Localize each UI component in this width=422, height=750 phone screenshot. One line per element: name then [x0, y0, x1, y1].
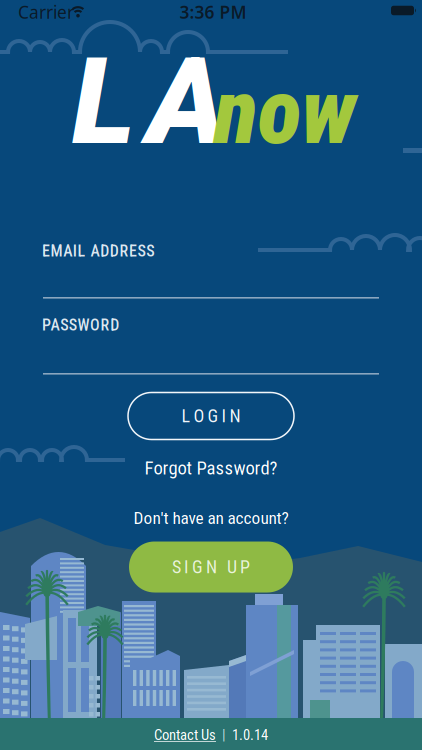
- staticText: L A: [72, 32, 226, 172]
- button[interactable]: Contact Us: [154, 726, 216, 744]
- staticText: L O G I N: [181, 405, 240, 427]
- staticText: PASSWORD: [42, 316, 119, 334]
- button[interactable]: S I G N U P: [129, 541, 293, 592]
- button[interactable]: L O G I N: [128, 392, 294, 439]
- staticText: Forgot Password?: [144, 457, 277, 479]
- staticText: Carrier: [18, 0, 74, 23]
- staticText: Don't have an account?: [133, 508, 288, 528]
- staticText: Contact Us: [154, 726, 216, 744]
- staticText: 1.0.14: [232, 726, 268, 744]
- staticText: EMAIL ADDRESS: [42, 242, 154, 260]
- staticText: |: [222, 726, 226, 744]
- staticText: 3:36 PM: [179, 0, 246, 23]
- staticText: now: [214, 59, 356, 165]
- staticText: S I G N U P: [172, 556, 250, 578]
- button[interactable]: Forgot Password?: [86, 456, 336, 480]
